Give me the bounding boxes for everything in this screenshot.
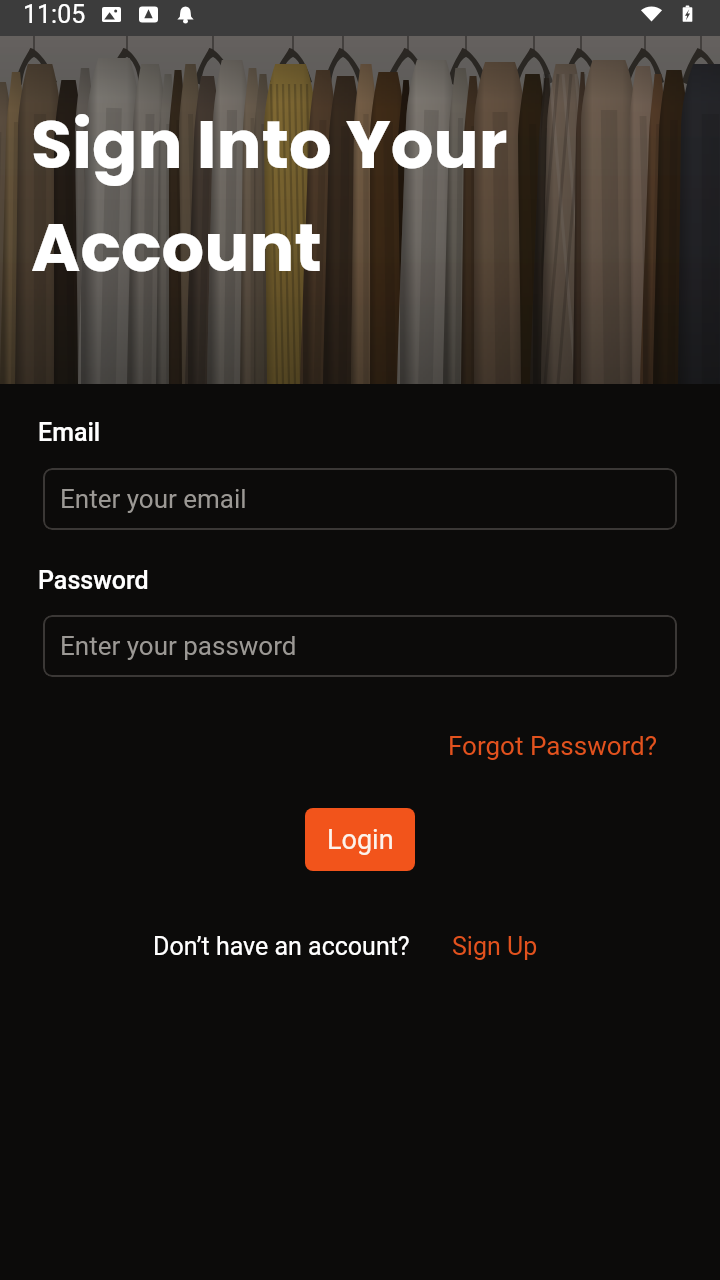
button[interactable]: Forgot Password? (434, 725, 672, 767)
staticText: Don’t have an account? (153, 932, 410, 961)
staticText: 11:05 (23, 0, 86, 29)
staticText: Enter your password (60, 631, 297, 661)
staticText: Sign Up (452, 932, 538, 961)
button[interactable]: Sign Up (452, 932, 538, 961)
staticText: Forgot Password? (448, 731, 658, 761)
staticText: Login (327, 824, 394, 856)
button[interactable]: Login (305, 808, 415, 871)
button[interactable]: Enter your email (43, 468, 677, 530)
button[interactable]: Enter your password (43, 615, 677, 677)
staticText: Email (38, 418, 101, 447)
staticText: Password (38, 566, 149, 595)
staticText: Enter your email (60, 484, 247, 514)
staticText: Sign Into Your Account (31, 98, 508, 294)
